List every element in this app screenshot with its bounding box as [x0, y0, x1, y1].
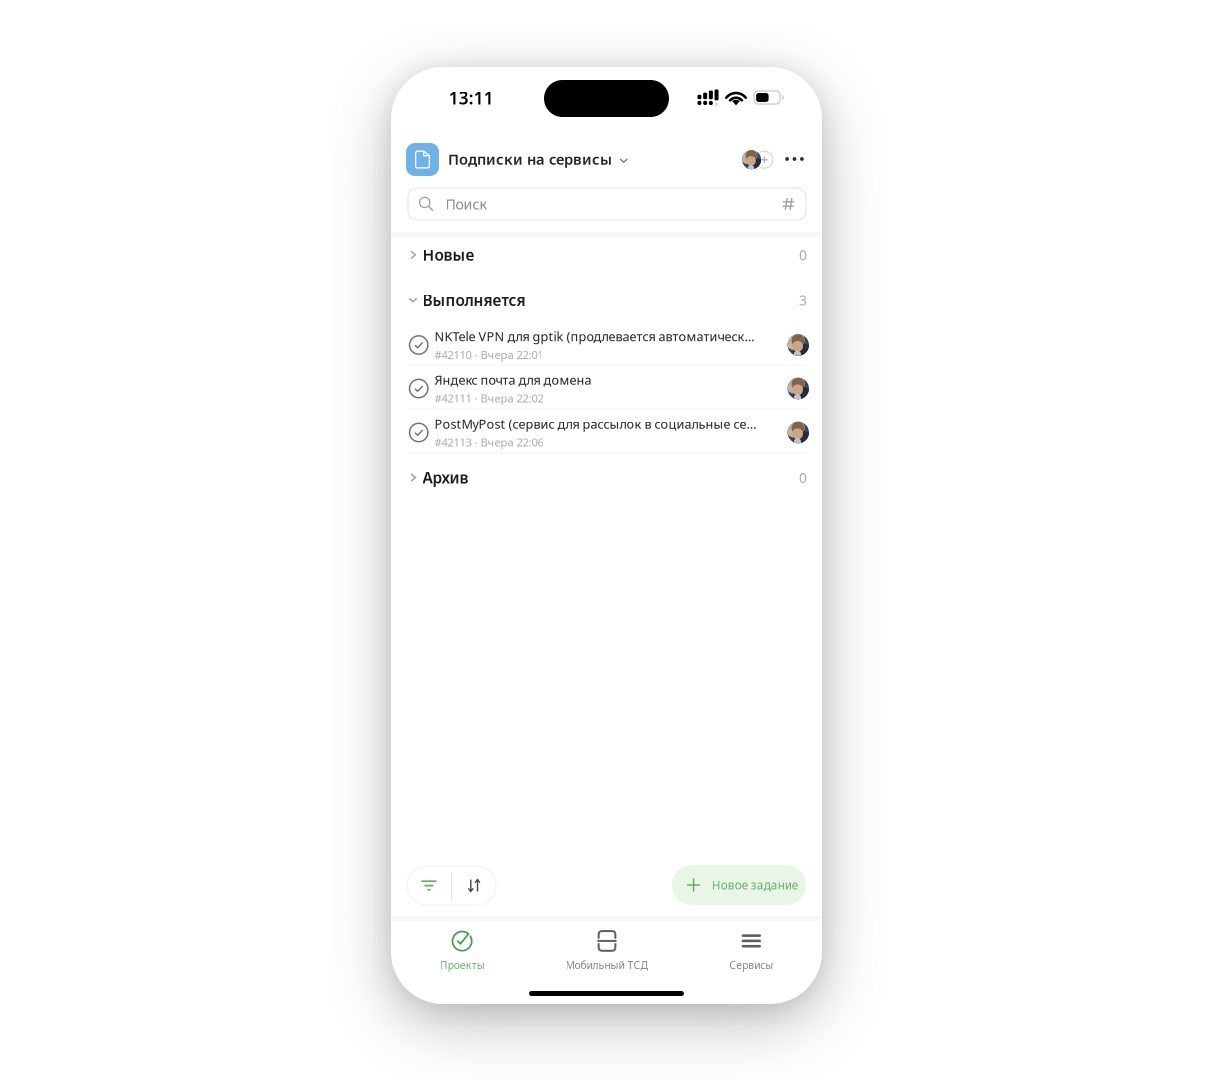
staticText: #42111 · Вчера 22:02: [434, 390, 543, 406]
staticText: 0: [799, 245, 807, 264]
staticText: Поиск: [445, 194, 487, 214]
staticText: Архив: [422, 467, 468, 488]
button[interactable]: Поиск: [408, 188, 806, 220]
staticText: Яндекс почта для домена: [434, 371, 591, 388]
staticText: Подписки на сервисы: [448, 149, 612, 169]
staticText: Проекты: [440, 958, 485, 972]
staticText: NKTele VPN для gptik (продлевается автом…: [434, 328, 754, 345]
button[interactable]: Участники: [740, 148, 771, 172]
button[interactable]: NKTele VPN для gptik (продлевается автом…: [391, 323, 822, 367]
staticText: #42110 · Вчера 22:01: [434, 347, 543, 362]
button[interactable]: Архив: [391, 455, 822, 499]
staticText: PostMyPost (сервис для рассылок в социал…: [434, 415, 756, 432]
button[interactable]: Сервисы: [681, 930, 821, 972]
button[interactable]: Ещё: [781, 148, 807, 170]
staticText: Новые: [422, 244, 474, 265]
button[interactable]: Выполняется: [391, 278, 822, 322]
staticText: Новое задание: [712, 877, 798, 893]
button[interactable]: Проекты: [392, 930, 532, 972]
button[interactable]: Фильтр: [407, 866, 451, 905]
button[interactable]: Сортировка: [452, 866, 496, 905]
staticText: Выполняется: [422, 290, 525, 310]
staticText: #42113 · Вчера 22:06: [434, 434, 543, 450]
staticText: 0: [799, 468, 807, 487]
staticText: Сервисы: [729, 958, 773, 972]
button[interactable]: Яндекс почта для домена: [391, 366, 822, 410]
button[interactable]: Подписки на сервисы: [448, 144, 628, 174]
button[interactable]: Мобильный ТСД: [537, 930, 677, 972]
staticText: Мобильный ТСД: [565, 958, 648, 972]
staticText: 3: [799, 290, 807, 310]
button[interactable]: PostMyPost (сервис для рассылок в социал…: [391, 410, 822, 454]
button[interactable]: Проект: [406, 143, 439, 176]
staticText: 13:11: [449, 86, 494, 110]
button[interactable]: Новые: [391, 233, 822, 277]
button[interactable]: Новое задание: [672, 865, 806, 905]
